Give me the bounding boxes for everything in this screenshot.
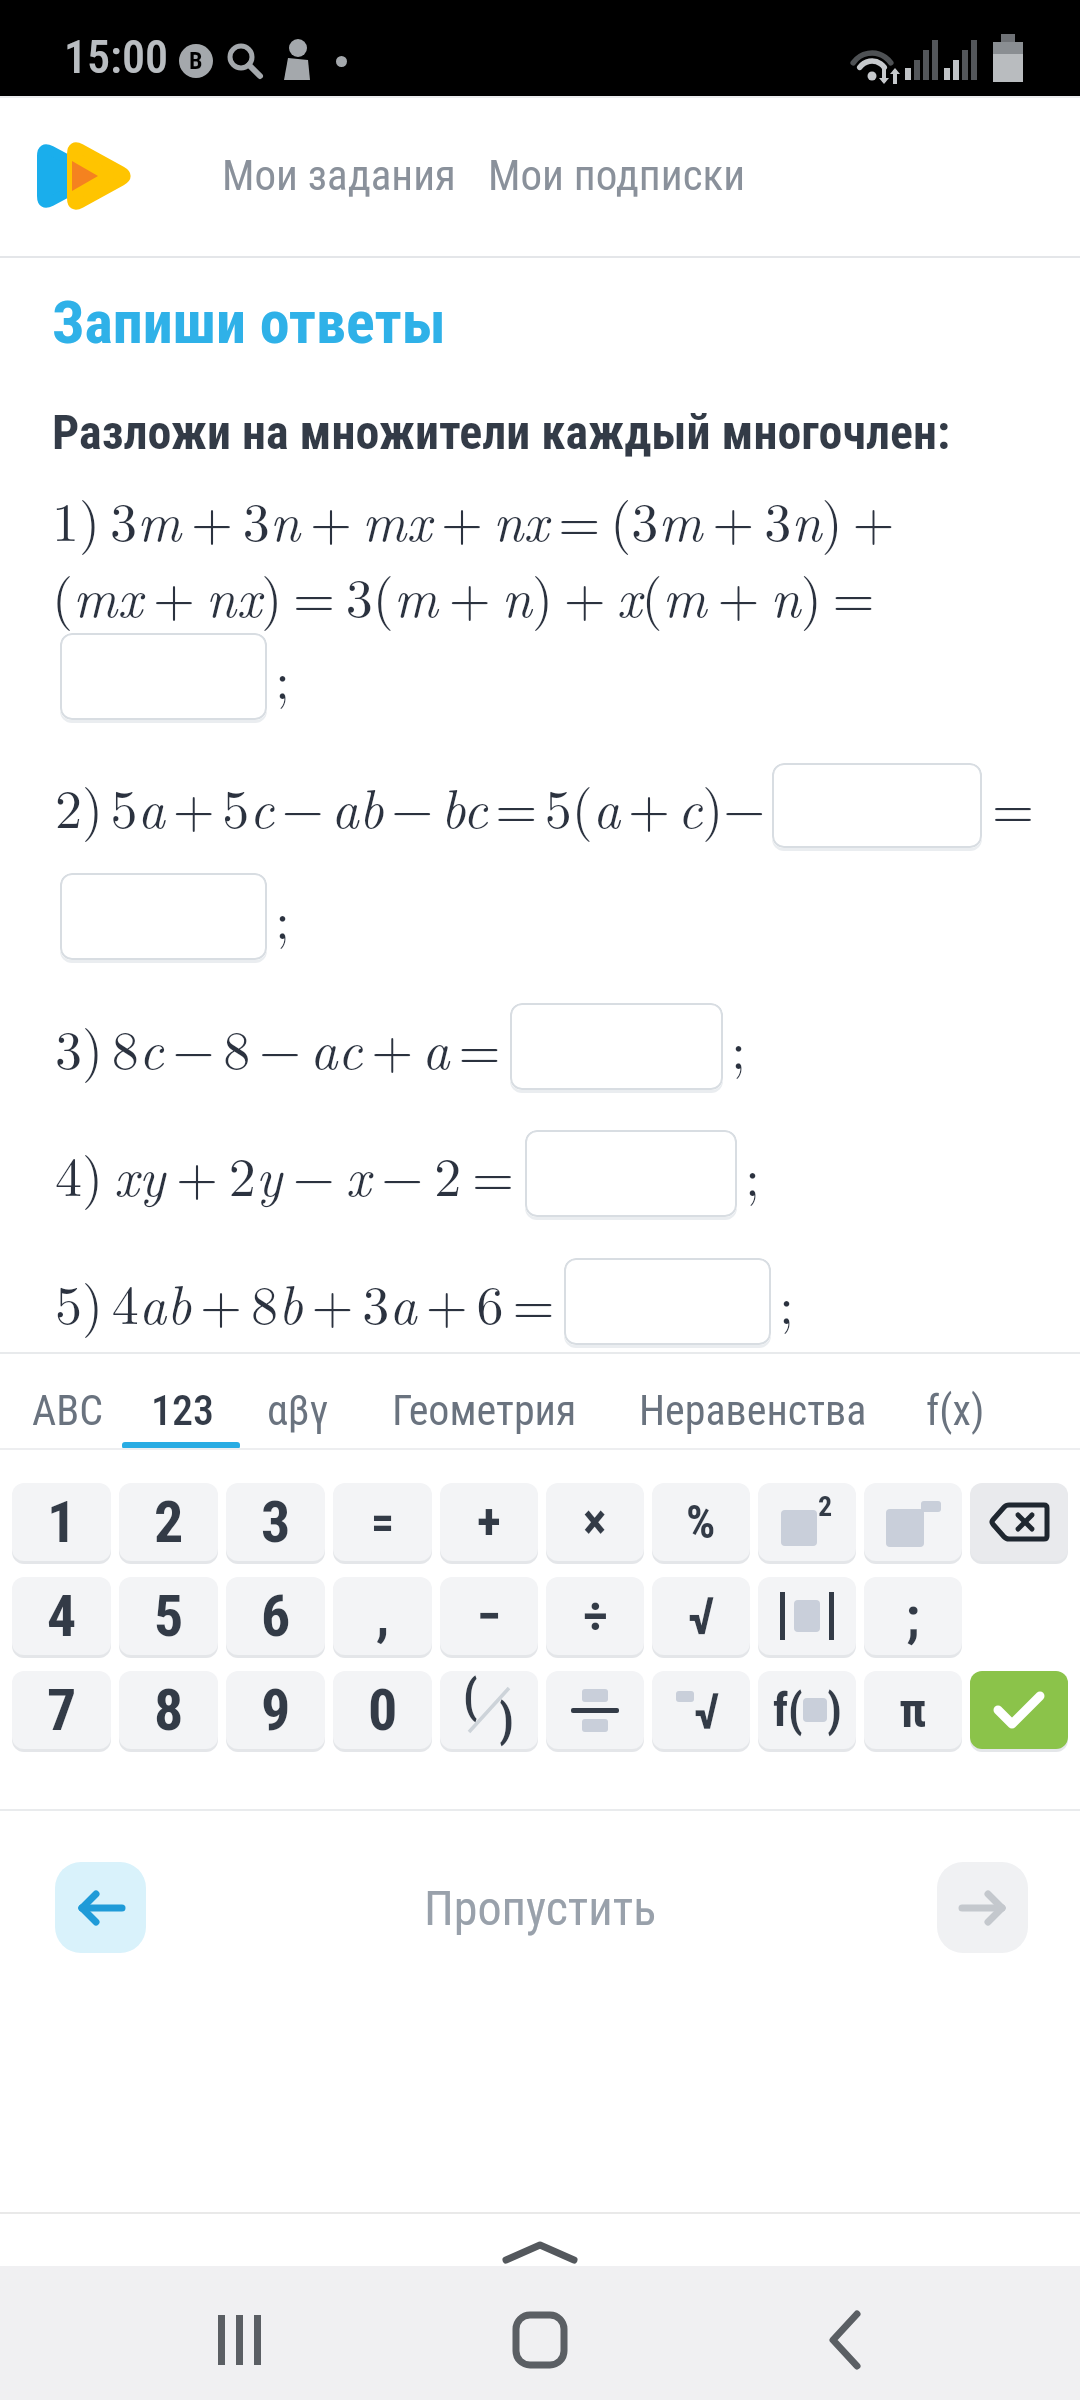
button[interactable]: Мои задания	[206, 134, 472, 216]
button[interactable]: 2	[758, 1483, 856, 1561]
staticText: 123	[151, 1386, 215, 1435]
button[interactable]: 7	[12, 1671, 111, 1749]
button[interactable]	[60, 633, 267, 720]
button[interactable]: ×	[546, 1483, 644, 1561]
staticText: 7	[47, 1676, 77, 1744]
staticText: %	[686, 1495, 716, 1549]
button[interactable]: f(	[758, 1671, 856, 1749]
staticText: ÷	[583, 1587, 608, 1646]
staticText: 2) 5a + 5c − ab − bc = 5(a + c)−	[55, 767, 766, 844]
button[interactable]: Мои подписки	[472, 134, 762, 216]
staticText: ×	[583, 1493, 607, 1552]
button[interactable]: 1	[12, 1483, 111, 1561]
staticText: +	[477, 1493, 501, 1552]
staticText: 2	[154, 1488, 184, 1556]
button[interactable]: 5	[119, 1577, 218, 1655]
staticText: 3) 8c − 8 − ac + a =	[55, 1008, 510, 1085]
staticText: 15:00	[64, 30, 169, 84]
button[interactable]: 3	[226, 1483, 325, 1561]
button[interactable]: αβγ	[251, 1378, 345, 1443]
button[interactable]	[795, 2290, 895, 2390]
staticText: π	[899, 1682, 927, 1738]
staticText: (	[463, 1671, 478, 1723]
button[interactable]: +	[440, 1483, 538, 1561]
staticText: Мои задания	[222, 150, 456, 200]
button[interactable]	[490, 2290, 590, 2390]
staticText: =	[371, 1495, 395, 1549]
staticText: αβγ	[267, 1386, 329, 1435]
button[interactable]: ;	[864, 1577, 962, 1655]
button[interactable]: 2	[119, 1483, 218, 1561]
staticText: )	[499, 1693, 514, 1747]
staticText: 0	[368, 1676, 398, 1744]
staticText: ;	[906, 1585, 920, 1648]
button[interactable]	[864, 1483, 962, 1561]
staticText: 4) xy + 2y − x − 2 =	[55, 1135, 525, 1212]
button[interactable]: Пропустить	[400, 1868, 681, 1948]
button[interactable]	[55, 1862, 146, 1953]
button[interactable]	[772, 763, 982, 848]
button[interactable]: 9	[226, 1671, 325, 1749]
staticText: 2	[818, 1490, 833, 1523]
staticText: Неравенства	[639, 1386, 867, 1435]
button[interactable]	[60, 873, 267, 960]
button[interactable]: 4	[12, 1577, 111, 1655]
button[interactable]	[546, 1671, 644, 1749]
staticText: 3	[261, 1488, 291, 1556]
button[interactable]: π	[864, 1671, 962, 1749]
button[interactable]: 123	[135, 1378, 231, 1443]
staticText: )	[827, 1683, 842, 1737]
button[interactable]: 6	[226, 1577, 325, 1655]
button[interactable]: ,	[333, 1577, 432, 1655]
staticText: Пропустить	[424, 1880, 657, 1936]
staticText: Разложи на множители каждый многочлен:	[52, 404, 951, 460]
staticText: 4	[47, 1582, 77, 1650]
button[interactable]: −	[440, 1577, 538, 1655]
staticText: ;	[275, 878, 291, 955]
staticText: 9	[261, 1676, 291, 1744]
staticText: 5) 4ab + 8b + 3a + 6 =	[55, 1263, 564, 1340]
button[interactable]	[564, 1258, 771, 1345]
staticText: √	[694, 1683, 720, 1742]
button[interactable]: =	[333, 1483, 432, 1561]
button[interactable]: ÷	[546, 1577, 644, 1655]
staticText: ;	[731, 1008, 747, 1085]
staticText: Запиши ответы	[52, 287, 446, 357]
staticText: √	[688, 1586, 715, 1647]
button[interactable]: f(x)	[910, 1378, 1001, 1443]
button[interactable]	[970, 1483, 1068, 1561]
button[interactable]: Неравенства	[623, 1378, 883, 1443]
button[interactable]	[510, 1003, 723, 1090]
staticText: Мои подписки	[488, 150, 746, 200]
staticText: ;	[275, 638, 291, 715]
button[interactable]: %	[652, 1483, 750, 1561]
staticText: ;	[779, 1263, 795, 1340]
button[interactable]	[190, 2290, 290, 2390]
staticText: ,	[376, 1585, 390, 1648]
staticText: B	[189, 47, 203, 75]
staticText: ;	[745, 1135, 761, 1212]
button[interactable]: (	[440, 1671, 538, 1749]
staticText: 5	[154, 1582, 184, 1650]
button[interactable]: √	[652, 1577, 750, 1655]
staticText: 8	[154, 1676, 184, 1744]
button[interactable]: √	[652, 1671, 750, 1749]
button[interactable]: Геометрия	[376, 1378, 593, 1443]
button[interactable]	[970, 1671, 1068, 1749]
staticText: −	[477, 1587, 502, 1646]
button[interactable]: 0	[333, 1671, 432, 1749]
button[interactable]	[758, 1577, 856, 1655]
button[interactable]: ABC	[16, 1378, 119, 1443]
staticText: =	[992, 767, 1035, 844]
button[interactable]	[525, 1130, 737, 1217]
staticText: f(	[773, 1683, 803, 1737]
staticText: (mx + nx) = 3(m + n) + x(m + n) =	[52, 556, 875, 633]
button[interactable]: 8	[119, 1671, 218, 1749]
staticText: Геометрия	[392, 1386, 577, 1435]
staticText: 1	[47, 1488, 77, 1556]
staticText: f(x)	[926, 1386, 985, 1435]
staticText: 6	[261, 1582, 291, 1650]
staticText: ABC	[32, 1386, 103, 1435]
button[interactable]	[937, 1862, 1028, 1953]
staticText: 1) 3m + 3n + mx + nx = (3m + 3n) +	[52, 480, 895, 557]
